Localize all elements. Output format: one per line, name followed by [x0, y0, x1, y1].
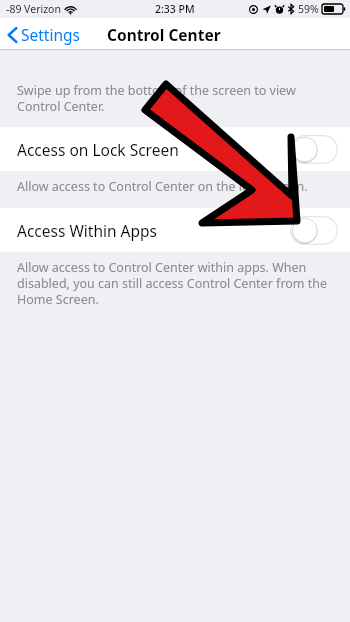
staticText: 59%: [298, 2, 319, 16]
staticText: Allow access to Control Center on the lo…: [17, 178, 308, 195]
button[interactable]: Access on Lock Screen: [0, 127, 350, 171]
button[interactable]: Toggle off: [290, 135, 338, 164]
staticText: Access Within Apps: [17, 220, 157, 241]
staticText: 2:33 PM: [155, 2, 195, 16]
staticText: -89 Verizon: [6, 2, 61, 16]
button[interactable]: Settings: [0, 20, 90, 49]
staticText: Swipe up from the bottom of the screen t…: [17, 82, 328, 115]
staticText: Settings: [21, 24, 80, 45]
staticText: Access on Lock Screen: [17, 139, 179, 160]
staticText: Control Center: [107, 24, 221, 45]
button[interactable]: Toggle off: [290, 216, 338, 245]
button[interactable]: Access Within Apps: [0, 208, 350, 252]
staticText: Allow access to Control Center within ap…: [17, 259, 336, 308]
